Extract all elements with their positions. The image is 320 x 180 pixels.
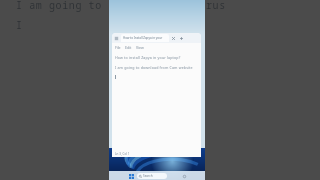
staticText: How to Install Zapya in your laptop xyxy=(123,36,169,40)
button[interactable]: Start xyxy=(127,172,135,180)
staticText: How to install Zapya in your laptop? xyxy=(115,55,181,60)
button[interactable]: How to Install Zapya in your laptop xyxy=(121,34,169,42)
staticText: File xyxy=(115,45,121,50)
staticText: View xyxy=(136,45,144,50)
staticText: Search xyxy=(143,174,153,178)
button[interactable]: Search xyxy=(137,173,167,179)
staticText: I am going to download from Cam website xyxy=(115,65,193,70)
staticText: I am going to down xyxy=(16,0,135,12)
button[interactable]: File xyxy=(115,45,121,50)
staticText: rus xyxy=(206,0,226,12)
button[interactable]: System tray xyxy=(181,173,187,179)
staticText: Ln 3, Col 1 xyxy=(115,152,130,156)
button[interactable]: View xyxy=(136,45,144,50)
button[interactable]: New tab xyxy=(178,35,184,41)
staticText: Edit xyxy=(125,45,132,50)
button[interactable]: Edit xyxy=(125,45,132,50)
staticText: I xyxy=(16,18,22,32)
button[interactable]: Close tab xyxy=(170,35,176,41)
